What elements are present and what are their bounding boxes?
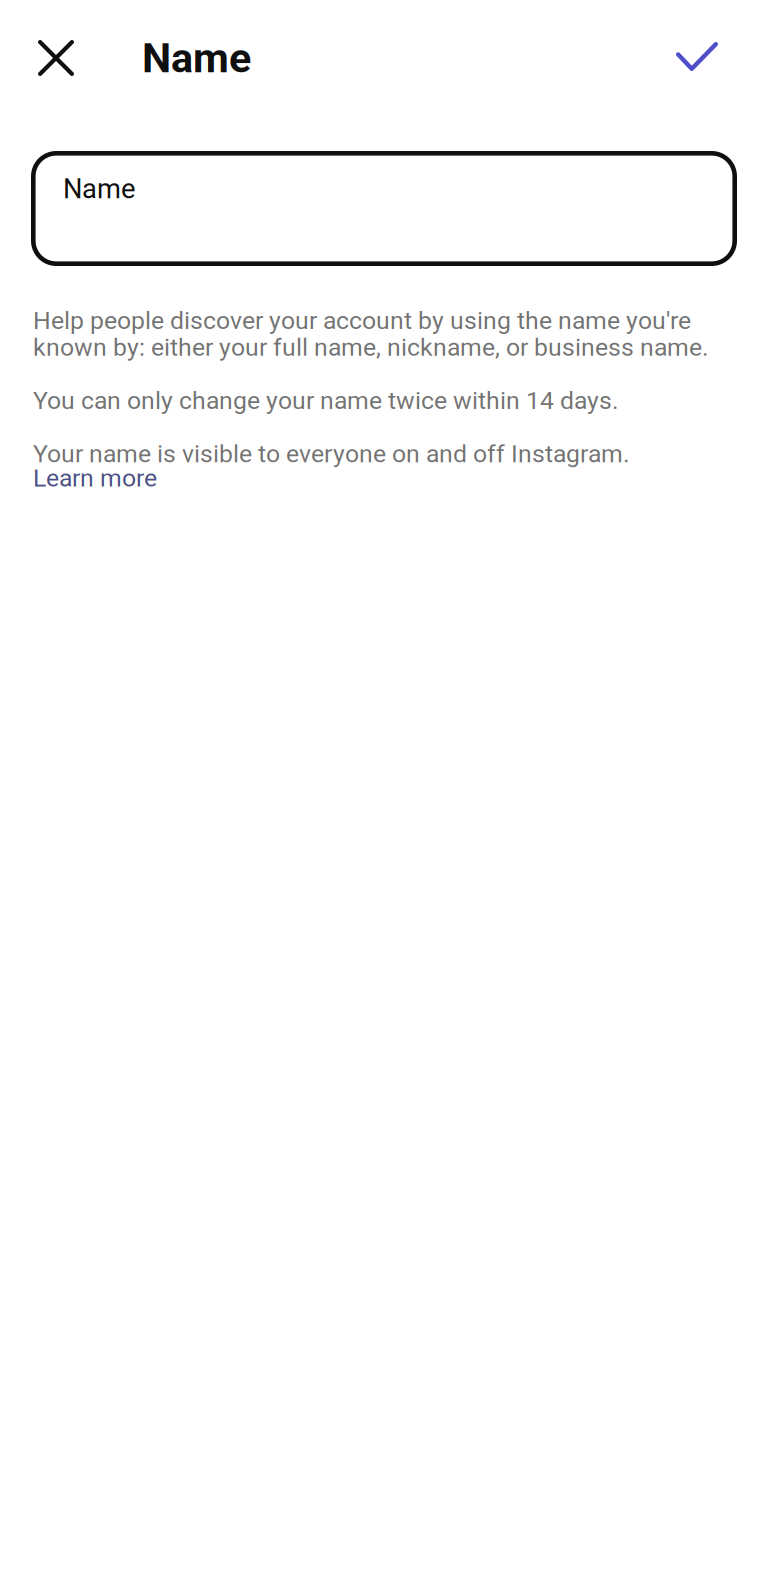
button[interactable]: Name [31,151,737,266]
button[interactable]: Learn more [33,463,157,492]
staticText: Help people discover your account by usi… [33,306,709,468]
button[interactable]: Close [26,22,86,94]
staticText: Name [63,173,135,205]
staticText: Name [142,34,251,82]
staticText: Learn more [33,463,157,492]
button[interactable]: Save [667,22,727,94]
